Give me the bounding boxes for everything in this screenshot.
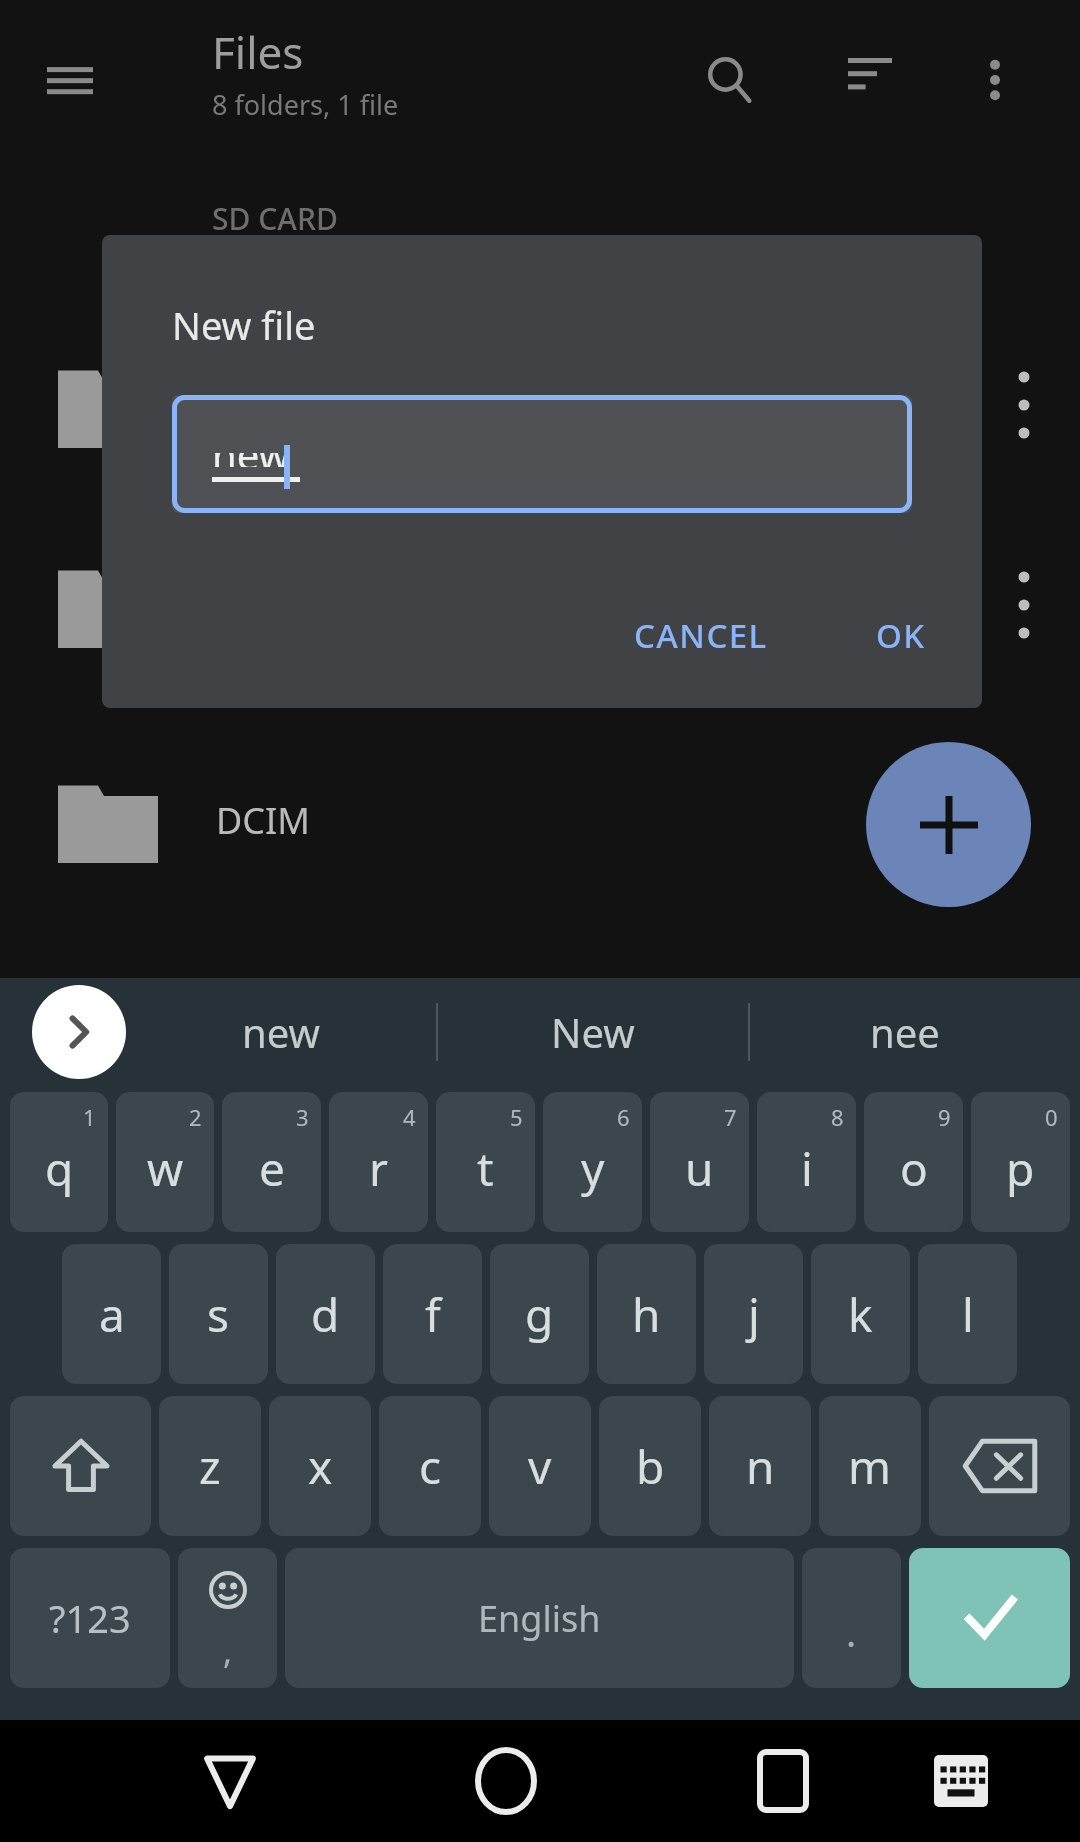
button[interactable]: More options bbox=[955, 40, 1035, 120]
button[interactable]: Home bbox=[440, 1720, 572, 1842]
button[interactable]: 6 bbox=[543, 1092, 642, 1232]
button[interactable]: d bbox=[276, 1244, 375, 1384]
staticText: h bbox=[632, 1283, 661, 1346]
button[interactable]: . bbox=[802, 1548, 901, 1688]
button[interactable]: Create new bbox=[866, 742, 1031, 907]
button[interactable] bbox=[0, 505, 1080, 705]
staticText: Files bbox=[212, 22, 304, 82]
staticText: y bbox=[581, 1137, 605, 1200]
button[interactable]: new bbox=[172, 395, 912, 513]
button[interactable]: 9 bbox=[864, 1092, 963, 1232]
staticText: d bbox=[311, 1283, 340, 1346]
staticText: i bbox=[801, 1137, 813, 1200]
button[interactable]: 0 bbox=[971, 1092, 1070, 1232]
staticText: . bbox=[846, 1606, 857, 1658]
button[interactable]: h bbox=[597, 1244, 696, 1384]
staticText: , bbox=[223, 1628, 233, 1674]
staticText: g bbox=[525, 1283, 554, 1346]
button[interactable]: Recents bbox=[717, 1720, 849, 1842]
staticText: u bbox=[685, 1137, 714, 1200]
staticText: OK bbox=[876, 613, 926, 658]
button[interactable]: English bbox=[285, 1548, 794, 1688]
button[interactable]: Emoji bbox=[178, 1548, 277, 1688]
staticText: ?123 bbox=[49, 1592, 131, 1644]
button[interactable]: 3 bbox=[222, 1092, 321, 1232]
button[interactable]: More suggestions bbox=[32, 985, 126, 1079]
button[interactable] bbox=[0, 305, 1080, 505]
staticText: nee bbox=[870, 1005, 940, 1059]
staticText: DCIM bbox=[216, 796, 310, 845]
staticText: r bbox=[369, 1137, 388, 1200]
staticText: a bbox=[99, 1283, 125, 1346]
staticText: t bbox=[477, 1137, 494, 1200]
staticText: new bbox=[212, 453, 290, 467]
staticText: n bbox=[746, 1435, 775, 1498]
staticText: New file bbox=[172, 299, 316, 351]
staticText: p bbox=[1006, 1137, 1035, 1200]
button[interactable]: OK bbox=[850, 593, 952, 678]
button[interactable]: m bbox=[819, 1396, 921, 1536]
button[interactable]: b bbox=[599, 1396, 701, 1536]
staticText: k bbox=[848, 1283, 873, 1346]
staticText: l bbox=[962, 1283, 974, 1346]
button[interactable]: n bbox=[709, 1396, 811, 1536]
staticText: j bbox=[748, 1283, 760, 1346]
button[interactable]: Search bbox=[690, 40, 770, 120]
staticText: 8 folders, 1 file bbox=[212, 86, 399, 123]
staticText: 4 bbox=[403, 1102, 416, 1132]
button[interactable]: Backspace bbox=[929, 1396, 1070, 1536]
staticText: e bbox=[259, 1137, 285, 1200]
button[interactable]: k bbox=[811, 1244, 910, 1384]
staticText: w bbox=[147, 1137, 184, 1200]
button[interactable]: j bbox=[704, 1244, 803, 1384]
button[interactable]: 2 bbox=[116, 1092, 214, 1232]
button[interactable]: c bbox=[379, 1396, 481, 1536]
staticText: CANCEL bbox=[634, 613, 768, 658]
button[interactable]: Enter bbox=[909, 1548, 1070, 1688]
staticText: 2 bbox=[189, 1102, 202, 1132]
button[interactable]: ?123 bbox=[10, 1548, 170, 1688]
staticText: s bbox=[207, 1283, 230, 1346]
button[interactable]: DCIM bbox=[0, 745, 1080, 895]
staticText: m bbox=[848, 1435, 892, 1498]
button[interactable]: a bbox=[62, 1244, 161, 1384]
staticText: 3 bbox=[296, 1102, 309, 1132]
staticText: 9 bbox=[938, 1102, 951, 1132]
button[interactable]: 1 bbox=[10, 1092, 108, 1232]
staticText: 6 bbox=[617, 1102, 630, 1132]
button[interactable]: 8 bbox=[757, 1092, 856, 1232]
button[interactable]: 7 bbox=[650, 1092, 749, 1232]
staticText: f bbox=[425, 1283, 441, 1346]
staticText: 8 bbox=[831, 1102, 844, 1132]
button[interactable]: nee bbox=[750, 978, 1060, 1086]
staticText: 1 bbox=[83, 1102, 96, 1132]
button[interactable]: g bbox=[490, 1244, 589, 1384]
button[interactable]: 4 bbox=[329, 1092, 428, 1232]
button[interactable]: 5 bbox=[436, 1092, 535, 1232]
button[interactable]: New bbox=[438, 978, 748, 1086]
button[interactable]: v bbox=[489, 1396, 591, 1536]
button[interactable]: x bbox=[269, 1396, 371, 1536]
button[interactable]: Switch keyboard bbox=[895, 1720, 1027, 1842]
staticText: z bbox=[199, 1435, 221, 1498]
staticText: 7 bbox=[724, 1102, 737, 1132]
button[interactable]: Back bbox=[164, 1720, 295, 1842]
staticText: o bbox=[900, 1137, 928, 1200]
button[interactable]: CANCEL bbox=[608, 593, 794, 678]
staticText: new bbox=[242, 1005, 320, 1059]
button[interactable]: f bbox=[383, 1244, 482, 1384]
button[interactable]: Open navigation drawer bbox=[28, 38, 112, 122]
staticText: q bbox=[45, 1137, 74, 1200]
staticText: c bbox=[419, 1435, 442, 1498]
button[interactable]: z bbox=[159, 1396, 261, 1536]
staticText: b bbox=[636, 1435, 665, 1498]
staticText: English bbox=[478, 1594, 601, 1643]
staticText: 0 bbox=[1045, 1102, 1058, 1132]
staticText: x bbox=[308, 1435, 333, 1498]
button[interactable]: Sort bbox=[830, 40, 910, 120]
button[interactable]: l bbox=[918, 1244, 1017, 1384]
button[interactable]: new bbox=[126, 978, 436, 1086]
staticText: New bbox=[551, 1005, 635, 1059]
button[interactable]: Shift bbox=[10, 1396, 151, 1536]
button[interactable]: s bbox=[169, 1244, 268, 1384]
